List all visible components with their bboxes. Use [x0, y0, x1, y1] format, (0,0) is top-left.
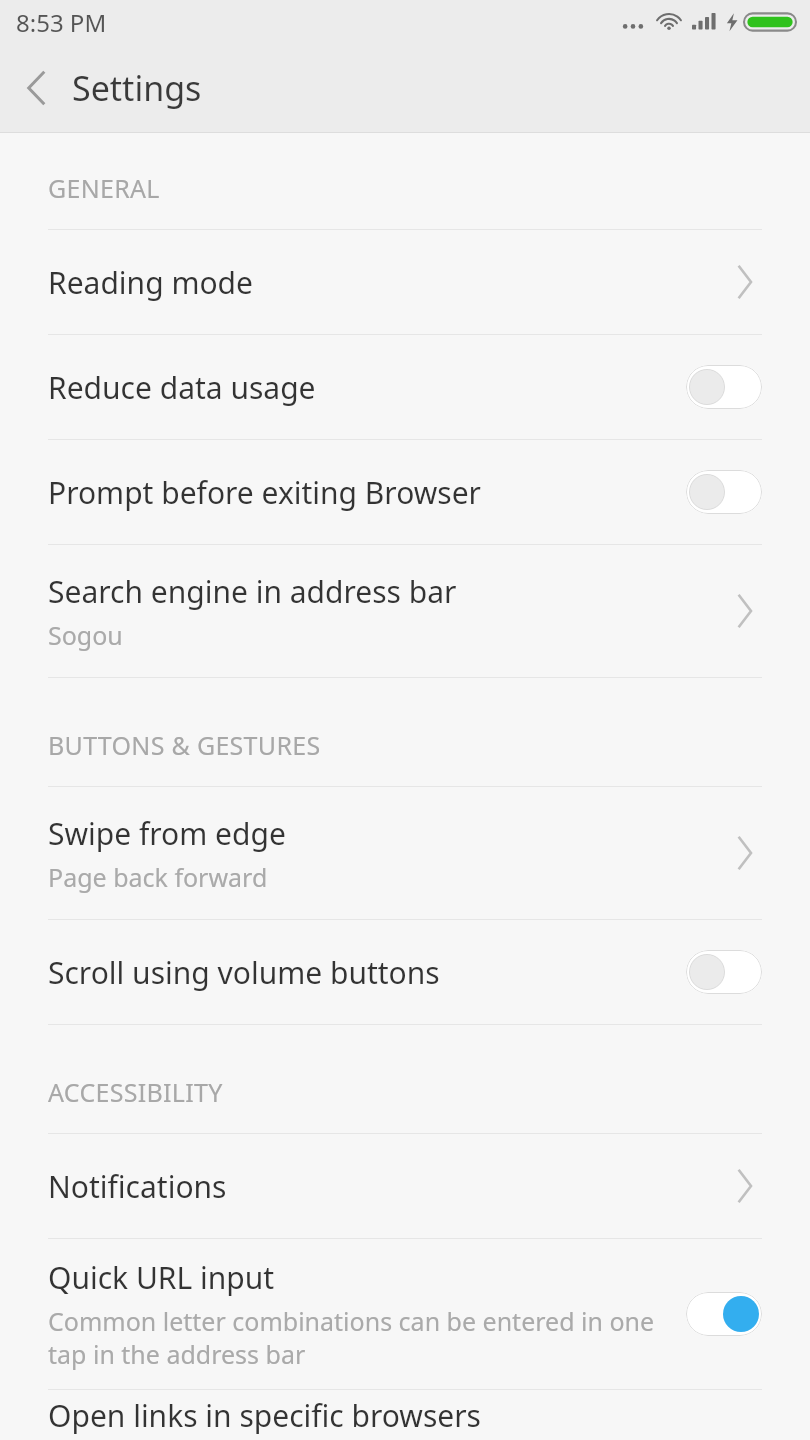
- staticText: Sogou: [48, 618, 123, 652]
- staticText: Notifications: [48, 1166, 227, 1207]
- button[interactable]: Search engine in address bar: [0, 545, 810, 677]
- staticText: Open links in specific browsers: [48, 1395, 481, 1436]
- staticText: Reduce data usage: [48, 367, 316, 408]
- staticText: ACCESSIBILITY: [48, 1075, 223, 1109]
- button[interactable]: Off: [686, 948, 762, 996]
- button[interactable]: Reading mode: [0, 230, 810, 334]
- button[interactable]: Off: [686, 468, 762, 516]
- staticText: Common letter combinations can be entere…: [48, 1304, 670, 1371]
- button[interactable]: Swipe from edge: [0, 787, 810, 919]
- staticText: Swipe from edge: [48, 813, 286, 854]
- button[interactable]: Scroll using volume buttons: [0, 920, 810, 1024]
- staticText: Quick URL input: [48, 1257, 275, 1298]
- button[interactable]: Reduce data usage: [0, 335, 810, 439]
- button[interactable]: Off: [686, 363, 762, 411]
- staticText: Prompt before exiting Browser: [48, 472, 481, 513]
- staticText: 8:53 PM: [16, 6, 107, 39]
- staticText: Scroll using volume buttons: [48, 952, 440, 993]
- staticText: Search engine in address bar: [48, 571, 457, 612]
- button[interactable]: On: [686, 1290, 762, 1338]
- staticText: Settings: [72, 65, 202, 111]
- staticText: BUTTONS & GESTURES: [48, 728, 321, 762]
- button[interactable]: Notifications: [0, 1134, 810, 1238]
- staticText: Page back forward: [48, 860, 268, 894]
- staticText: Reading mode: [48, 262, 253, 303]
- button[interactable]: Back: [0, 44, 72, 132]
- button[interactable]: Open links in specific browsers: [0, 1390, 810, 1440]
- staticText: GENERAL: [48, 171, 160, 205]
- button[interactable]: Quick URL input: [0, 1239, 810, 1389]
- button[interactable]: Prompt before exiting Browser: [0, 440, 810, 544]
